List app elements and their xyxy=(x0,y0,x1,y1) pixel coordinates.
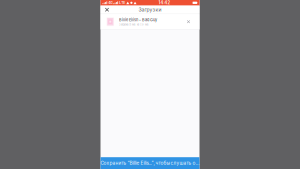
button[interactable]: Сохранить “Billie Eilis...”, чтобы слуша… xyxy=(100,157,199,169)
staticText: Загрузки xyxy=(138,7,161,13)
staticText: Загрузка 7,1 МБ из 7,9 МБ xyxy=(119,23,149,26)
staticText: LTE xyxy=(119,1,125,5)
button[interactable]: Billie Eilish – Bad Guy xyxy=(100,14,199,29)
staticText: 14:42 xyxy=(159,0,171,5)
staticText: 4G xyxy=(108,1,112,5)
button[interactable]: Close xyxy=(100,6,113,14)
staticText: Billie Eilish – Bad Guy xyxy=(119,17,157,22)
staticText: Сохранить “Billie Eilis...”, чтобы слуша… xyxy=(100,160,199,166)
